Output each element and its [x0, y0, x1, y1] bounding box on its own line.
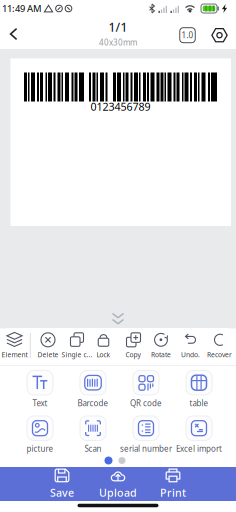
button[interactable]: Excel import [172, 416, 225, 453]
button[interactable]: QR code [119, 371, 172, 408]
button[interactable] [8, 26, 20, 42]
staticText: Save [50, 485, 74, 500]
staticText: Rotate [151, 350, 171, 359]
button[interactable]: Undo. [181, 332, 200, 359]
button[interactable]: serial number [119, 416, 172, 453]
button[interactable]: Barcode [66, 371, 119, 408]
staticText: Barcode [77, 398, 108, 408]
staticText: Upload [99, 485, 137, 500]
button[interactable]: Print [145, 468, 200, 500]
button[interactable]: table [172, 371, 225, 408]
button[interactable]: Text [13, 371, 66, 408]
staticText: Recover [207, 350, 232, 359]
button[interactable] [210, 26, 228, 44]
staticText: Lock [96, 350, 110, 359]
staticText: Copy [125, 350, 140, 359]
staticText: picture [26, 443, 53, 454]
staticText: Scan [84, 443, 101, 454]
button[interactable]: Rotate [151, 332, 171, 359]
staticText: Undo. [181, 350, 200, 359]
button[interactable]: Delete [37, 332, 58, 359]
button[interactable]: Scan [66, 416, 119, 453]
staticText: 1/1 [108, 19, 127, 35]
staticText: table [189, 398, 208, 408]
staticText: 0123456789 [90, 99, 150, 114]
button[interactable]: picture [13, 416, 66, 453]
staticText: Excel import [176, 443, 222, 454]
button[interactable]: Recover [207, 332, 232, 359]
staticText: Text [32, 398, 47, 408]
button[interactable]: Single c... [61, 332, 92, 359]
button[interactable]: Upload [90, 468, 145, 500]
staticText: Print [160, 485, 186, 500]
button[interactable]: Copy [124, 332, 142, 359]
button[interactable]: Save [34, 468, 89, 500]
staticText: Element [1, 350, 27, 359]
button[interactable]: Lock [94, 332, 112, 359]
button[interactable]: 1.0 [178, 26, 197, 45]
staticText: 40x30mm [99, 37, 137, 48]
staticText: Delete [37, 350, 58, 359]
staticText: QR code [130, 398, 162, 408]
staticText: Single c... [61, 350, 92, 359]
staticText: 11:49 AM [2, 2, 42, 15]
button[interactable] [111, 312, 125, 325]
staticText: serial number [120, 443, 172, 454]
staticText: 1.0 [181, 30, 193, 40]
button[interactable]: Element [1, 332, 27, 359]
